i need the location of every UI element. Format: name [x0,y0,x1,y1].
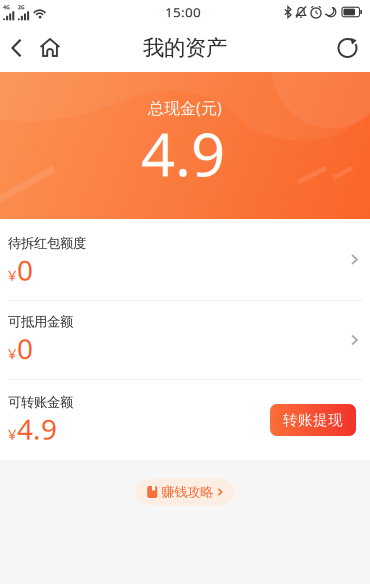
button[interactable]: 可抵用金额 [0,301,370,379]
button[interactable]: Home [33,24,67,72]
button[interactable]: Refresh [325,24,370,72]
staticText: 2G [18,4,25,11]
button[interactable]: 待拆红包额度 [0,219,370,300]
staticText: ¥ [8,265,16,285]
button[interactable]: 转账提现 [270,404,356,436]
staticText: 转账提现 [283,411,343,429]
staticText: 4.9 [141,113,225,193]
staticText: ¥ [8,424,16,444]
staticText: ¥ [8,344,16,363]
staticText: 赚钱攻略 [161,484,213,500]
button[interactable]: Back [0,24,33,72]
staticText: 0 [17,330,33,367]
staticText: 4G [3,4,10,11]
button[interactable]: 赚钱攻略 [136,479,234,505]
staticText: 4.9 [17,410,57,448]
staticText: 0 [17,251,33,289]
staticText: 待拆红包额度 [8,235,86,251]
staticText: 我的资产 [143,35,227,61]
staticText: 可转账金额 [8,394,73,410]
staticText: 可抵用金额 [8,313,73,330]
staticText: 总现金(元) [148,97,222,118]
staticText: 15:00 [165,3,201,21]
